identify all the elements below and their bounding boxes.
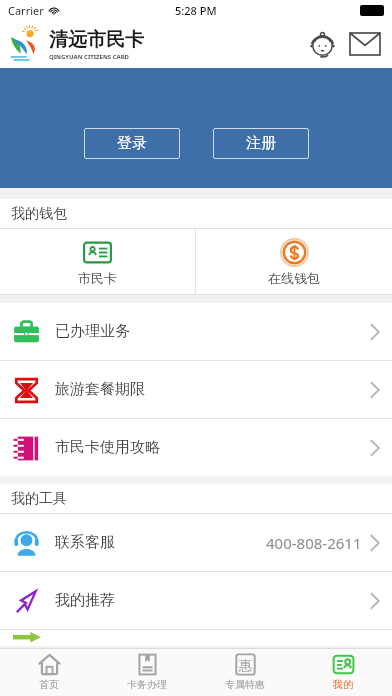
button[interactable]: 惠: [196, 648, 294, 696]
button[interactable]: 市民卡: [0, 229, 195, 294]
staticText: 我的推荐: [55, 591, 115, 610]
button[interactable]: 我的: [294, 648, 392, 696]
button[interactable]: 首页: [0, 648, 98, 696]
staticText: 我的工具: [11, 490, 67, 508]
staticText: 联系客服: [55, 533, 115, 552]
button[interactable]: Customer service: [305, 27, 339, 61]
button[interactable]: 旅游套餐期限: [0, 361, 392, 418]
staticText: 登录: [117, 134, 147, 153]
staticText: 注册: [246, 134, 276, 153]
staticText: 专属特惠: [225, 678, 265, 691]
staticText: 旅游套餐期限: [55, 380, 145, 399]
button[interactable]: 市民卡使用攻略: [0, 419, 392, 476]
staticText: 卡务办理: [127, 678, 167, 691]
staticText: 400-808-2611: [266, 533, 362, 553]
button[interactable]: 注册: [213, 128, 309, 159]
button[interactable]: 在线钱包: [196, 229, 392, 294]
button[interactable]: 登录: [84, 128, 180, 159]
staticText: 市民卡使用攻略: [55, 438, 160, 457]
staticText: 5:28 PM: [175, 3, 217, 18]
staticText: 清远市民卡: [49, 28, 144, 52]
button[interactable]: 我的推荐: [0, 572, 392, 629]
staticText: Carrier: [8, 3, 44, 18]
button[interactable]: 卡务办理: [98, 648, 196, 696]
button[interactable]: Messages: [348, 27, 382, 61]
staticText: 我的: [333, 678, 353, 691]
button[interactable]: 联系客服: [0, 514, 392, 571]
staticText: 惠: [239, 657, 252, 673]
staticText: 我的钱包: [11, 205, 67, 223]
staticText: 首页: [39, 678, 59, 691]
staticText: 市民卡: [78, 270, 117, 286]
staticText: 已办理业务: [55, 322, 130, 341]
staticText: QINGYUAN CITIZENS CARD: [49, 53, 130, 61]
staticText: 在线钱包: [268, 270, 320, 286]
button[interactable]: 已办理业务: [0, 303, 392, 360]
